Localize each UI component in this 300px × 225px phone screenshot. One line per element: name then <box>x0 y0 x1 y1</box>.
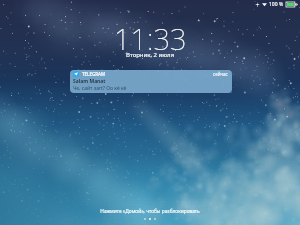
staticText: Salam Manat <box>73 78 106 85</box>
staticText: Вторник, 2 июля <box>126 51 175 59</box>
other: Wi-Fi <box>262 2 267 7</box>
staticText: Нажмите «Домой», чтобы разблокировать <box>100 208 200 215</box>
staticText: 100 % <box>269 1 284 8</box>
staticText: TELEGRAM <box>82 71 106 77</box>
staticText: 11:33 <box>114 19 187 58</box>
staticText: Че, сайт заrt? Оо кё кё <box>73 85 127 92</box>
button[interactable]: TELEGRAM <box>70 70 232 93</box>
other: Bluetooth <box>255 2 260 7</box>
staticText: сейчас <box>213 71 228 77</box>
